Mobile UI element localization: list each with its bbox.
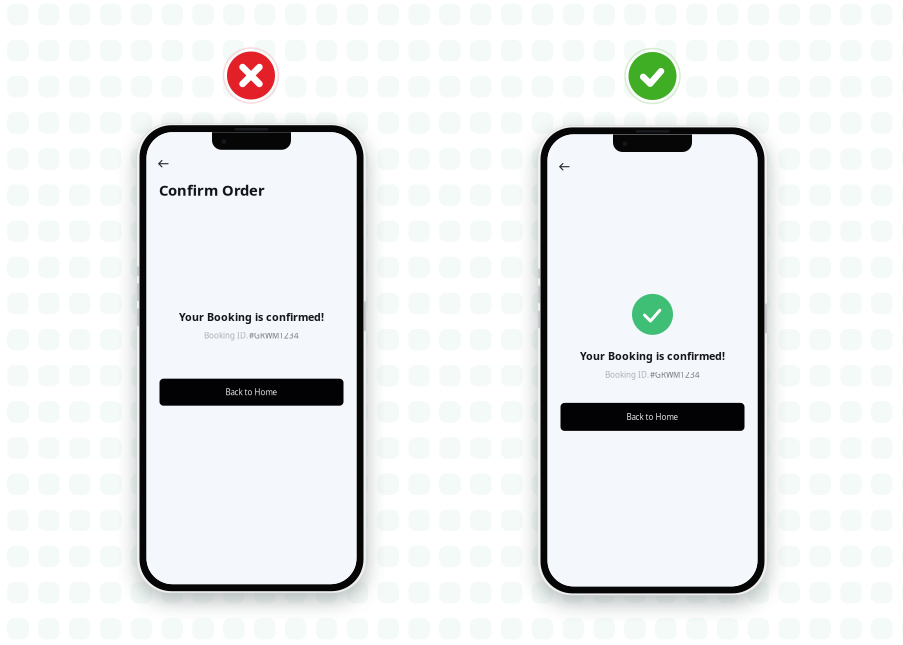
staticText: Booking ID. [204,330,248,341]
staticText: Confirm Order [159,180,265,200]
button[interactable]: Back [547,135,577,179]
staticText: #GRWM1234 [650,369,700,380]
staticText: Back to Home [626,412,678,422]
staticText: #GRWM1234 [249,330,299,341]
button[interactable]: Back to Home [560,403,744,431]
button[interactable]: Back to Home [159,379,343,406]
staticText: Your Booking is confirmed! [179,310,324,324]
staticText: Booking ID. [605,369,649,380]
staticText: Back to Home [225,387,277,397]
button[interactable]: Back [146,132,176,176]
staticText: Your Booking is confirmed! [580,349,725,363]
